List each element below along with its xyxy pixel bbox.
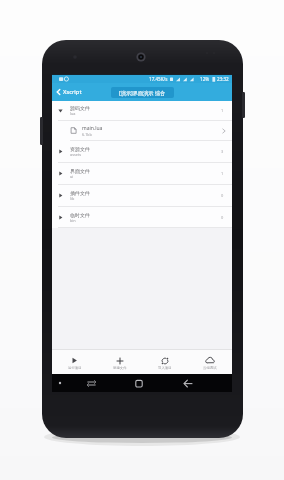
staticText: 新建文件 (113, 366, 127, 370)
button[interactable] (86, 379, 97, 388)
staticText: 3 (221, 149, 224, 154)
button[interactable] (133, 378, 145, 390)
button[interactable]: main.lua (52, 121, 232, 141)
staticText: 运行项目 (68, 366, 82, 370)
button[interactable]: Xscript (56, 88, 82, 96)
button[interactable] (181, 378, 195, 390)
staticText: bin (70, 218, 76, 223)
staticText: 资源文件 (70, 146, 90, 152)
staticText: lua (70, 111, 76, 116)
staticText: 云端调试 (203, 366, 217, 370)
button[interactable] (57, 380, 65, 386)
staticText: 1 (221, 108, 224, 113)
button[interactable]: 运行项目 (52, 350, 97, 374)
button[interactable]: [演示]界面演示 综合 (111, 87, 174, 98)
staticText: assets (70, 152, 82, 157)
button[interactable]: 插件文件 (52, 185, 232, 207)
button[interactable]: 云端调试 (187, 350, 232, 374)
button[interactable]: 资源文件 (52, 141, 232, 163)
staticText: lib (70, 196, 75, 201)
staticText: 导入项目 (158, 366, 172, 370)
staticText: Xscript (63, 88, 82, 96)
staticText: 12% (200, 76, 210, 82)
staticText: 1 (221, 171, 224, 176)
button[interactable]: 新建文件 (97, 350, 142, 374)
staticText: 源码文件 (70, 105, 90, 111)
staticText: 23:32 (217, 76, 229, 82)
button[interactable]: 界面文件 (52, 163, 232, 185)
staticText: 17.45K/s (149, 76, 168, 82)
staticText: ui (70, 174, 74, 179)
staticText: 临时文件 (70, 212, 90, 218)
staticText: 插件文件 (70, 190, 90, 196)
button[interactable]: 源码文件 (52, 101, 232, 121)
staticText: 0 (221, 193, 224, 198)
staticText: 0 (221, 215, 224, 220)
button[interactable]: 导入项目 (142, 350, 187, 374)
button[interactable]: 临时文件 (52, 207, 232, 228)
staticText: 6.1kb (82, 132, 92, 137)
staticText: main.lua (82, 125, 103, 132)
staticText: [演示]界面演示 综合 (119, 89, 166, 96)
staticText: 界面文件 (70, 168, 90, 174)
